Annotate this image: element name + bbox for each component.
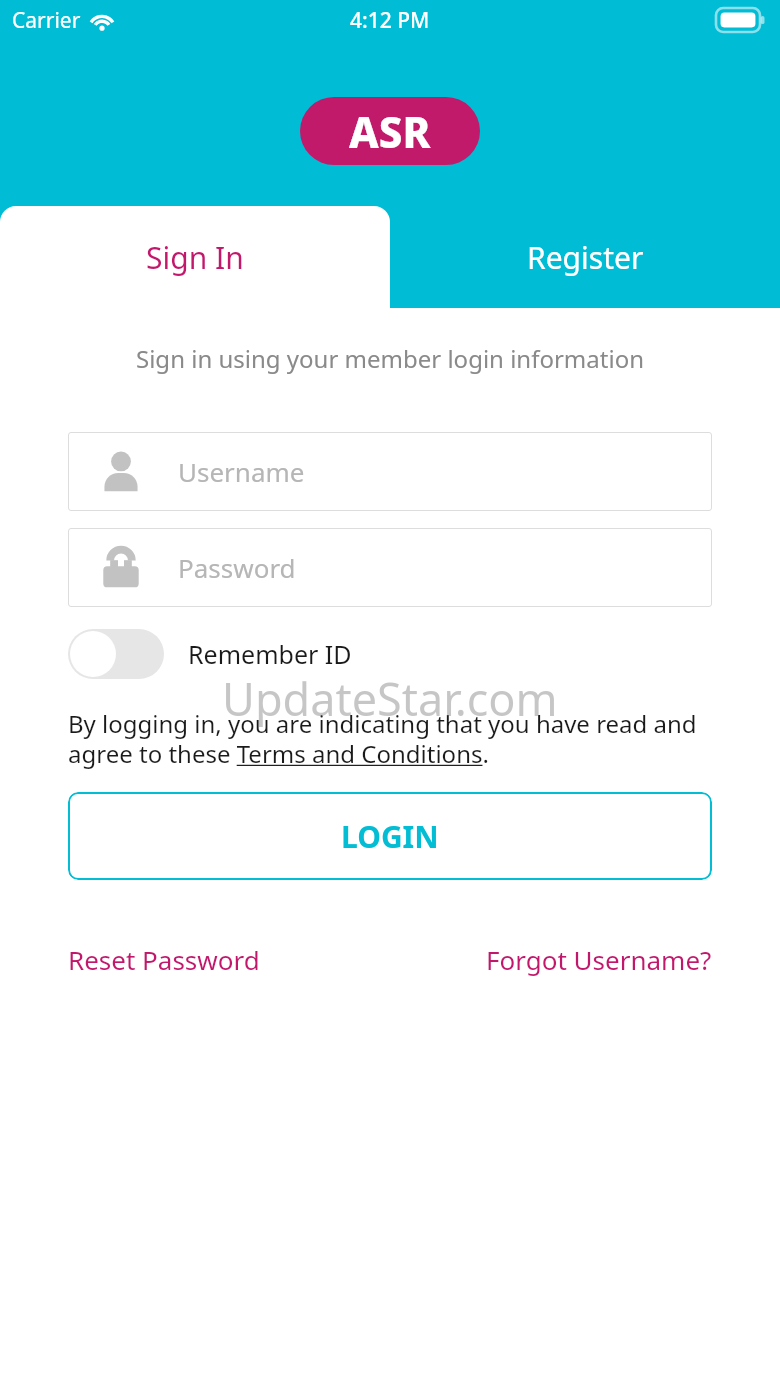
staticText: Reset Password [68, 942, 260, 977]
staticText: Remember ID [188, 637, 352, 671]
staticText: Forgot Username? [486, 942, 712, 977]
staticText: Register [527, 237, 644, 278]
other: Wi-Fi [89, 11, 115, 31]
staticText: Carrier [12, 6, 81, 35]
button[interactable]: Register [390, 206, 780, 308]
button[interactable]: Forgot Username? [486, 942, 712, 977]
button[interactable]: Password [68, 528, 712, 607]
staticText: By logging in, you are indicating that y… [68, 707, 720, 770]
button[interactable]: Username [68, 432, 712, 511]
staticText: Sign In [146, 237, 244, 278]
staticText: UpdateStar.com [222, 668, 558, 729]
staticText: Sign in using your member login informat… [136, 342, 644, 375]
staticText: Password [178, 550, 296, 585]
staticText: ASR [349, 103, 431, 160]
button[interactable]: LOGIN [68, 792, 712, 880]
other: Battery full [716, 8, 766, 32]
button[interactable]: Reset Password [68, 942, 260, 977]
button[interactable]: Remember ID [68, 629, 352, 679]
staticText: Username [178, 454, 305, 489]
button[interactable]: Sign In [0, 206, 390, 308]
staticText: LOGIN [341, 816, 439, 857]
staticText: 4:12 PM [350, 6, 430, 35]
